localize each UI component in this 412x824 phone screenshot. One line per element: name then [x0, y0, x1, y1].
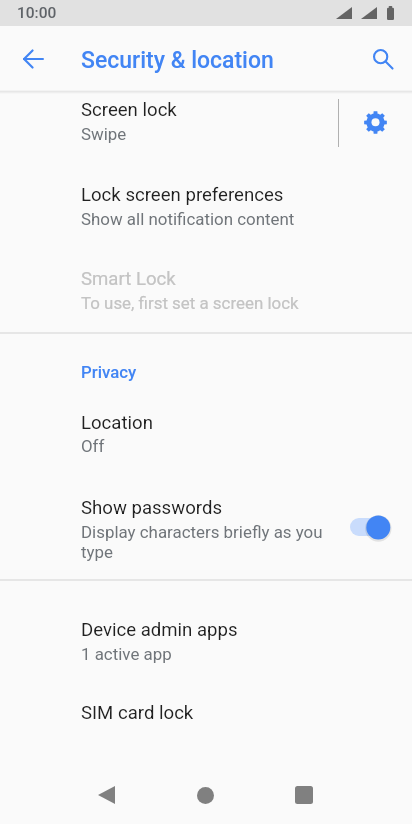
staticText: Location: [81, 412, 153, 434]
button[interactable]: Back: [74, 762, 138, 824]
staticText: Display characters briefly as you type: [81, 522, 333, 562]
button[interactable]: [0, 676, 412, 738]
button[interactable]: [0, 473, 340, 582]
staticText: Swipe: [81, 124, 127, 144]
staticText: Security & location: [81, 47, 274, 74]
staticText: Off: [81, 436, 105, 456]
staticText: Screen lock: [81, 99, 177, 121]
staticText: 10:00: [17, 4, 57, 22]
button[interactable]: Navigate up: [9, 35, 57, 83]
staticText: Show passwords: [81, 497, 223, 519]
staticText: 1 active app: [81, 644, 172, 664]
button[interactable]: Screen lock settings: [339, 92, 412, 153]
staticText: SIM card lock: [81, 702, 194, 724]
staticText: Lock screen preferences: [81, 184, 284, 206]
staticText: Device admin apps: [81, 619, 238, 641]
button[interactable]: [0, 260, 412, 334]
button[interactable]: [0, 176, 412, 260]
staticText: Smart Lock: [81, 268, 176, 290]
button[interactable]: [0, 389, 412, 473]
staticText: Show all notification content: [81, 209, 295, 229]
staticText: Privacy: [81, 362, 137, 382]
button[interactable]: Home: [173, 762, 237, 824]
button[interactable]: [0, 596, 412, 676]
button[interactable]: Recent apps: [272, 762, 336, 824]
staticText: To use, first set a screen lock: [81, 293, 299, 313]
button[interactable]: Search: [359, 35, 407, 83]
button[interactable]: [0, 92, 338, 153]
button[interactable]: Show passwords: [340, 473, 412, 582]
